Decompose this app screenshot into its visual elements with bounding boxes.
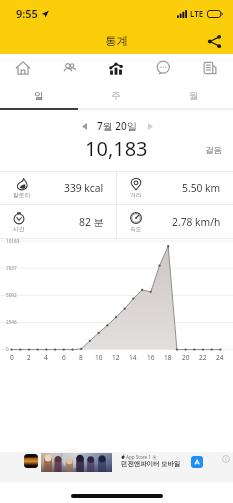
staticText: App Store 1 위 xyxy=(126,454,157,460)
staticText: 2 xyxy=(27,353,31,362)
button[interactable]: Home xyxy=(0,54,46,82)
staticText: 22 xyxy=(199,353,207,362)
staticText: 18 xyxy=(164,353,172,362)
staticText: 10,183 xyxy=(85,135,148,161)
staticText: 주 xyxy=(111,90,121,102)
button[interactable]: App Store 1 위 xyxy=(0,452,233,482)
staticText: 2546 xyxy=(6,319,17,325)
staticText: 월 xyxy=(189,90,199,102)
staticText: 시간 xyxy=(13,225,25,232)
staticText: 5092 xyxy=(6,292,17,298)
button[interactable]: 주 xyxy=(77,83,155,108)
staticText: 칼로리 xyxy=(13,191,31,198)
staticText: 12 xyxy=(112,353,120,362)
staticText: 통계 xyxy=(105,34,128,48)
button[interactable]: 거리 xyxy=(117,172,233,204)
button[interactable]: Next day xyxy=(141,117,159,135)
staticText: 6 xyxy=(62,353,66,362)
button[interactable]: 칼로리 xyxy=(0,172,116,204)
button[interactable]: Previous day xyxy=(75,117,93,135)
staticText: 10183 xyxy=(6,238,20,244)
button[interactable]: 시간 xyxy=(0,205,116,238)
button[interactable]: Share xyxy=(203,30,225,52)
staticText: LTE xyxy=(190,8,204,19)
staticText: 5.50 km xyxy=(182,181,221,195)
staticText: 16 xyxy=(147,353,155,362)
staticText: 7637 xyxy=(6,265,17,271)
staticText: 7월 20일 xyxy=(97,119,137,133)
button[interactable]: More xyxy=(186,54,233,82)
button[interactable]: Install xyxy=(191,456,203,468)
staticText: 8 xyxy=(79,353,83,362)
staticText: 0 xyxy=(10,353,14,362)
staticText: 9:55 xyxy=(16,6,38,21)
button[interactable]: Ad info xyxy=(221,454,230,463)
button[interactable]: 일 xyxy=(0,83,77,108)
staticText: 거리 xyxy=(130,191,142,198)
staticText: 10 xyxy=(95,353,103,362)
staticText: 4 xyxy=(44,353,48,362)
staticText: 339 kcal xyxy=(64,181,104,195)
staticText: 걸음 xyxy=(205,145,222,156)
staticText: 0 xyxy=(6,346,9,352)
staticText: 14 xyxy=(129,353,137,362)
staticText: 2.78 km/h xyxy=(172,215,221,229)
button[interactable]: Chat xyxy=(139,54,186,82)
button[interactable]: Friends xyxy=(46,54,92,82)
staticText: 일 xyxy=(34,90,44,102)
staticText: 속도 xyxy=(130,225,142,232)
staticText: 20 xyxy=(182,353,190,362)
button[interactable]: 속도 xyxy=(117,205,233,238)
staticText: 24 xyxy=(216,353,224,362)
button[interactable]: Statistics xyxy=(92,54,139,82)
staticText: 던전앤파이터 모바일 xyxy=(121,459,181,468)
button[interactable]: 월 xyxy=(155,83,233,108)
staticText: 82 분 xyxy=(79,215,104,229)
